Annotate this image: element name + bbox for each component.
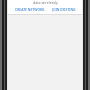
staticText: JOIN EXISTING	[52, 7, 76, 12]
staticText: data wirelessly	[33, 0, 58, 5]
button[interactable]: JOIN EXISTING	[50, 6, 78, 13]
button[interactable]: CREATE NETWORK	[13, 6, 47, 13]
staticText: CREATE NETWORK	[15, 7, 45, 12]
